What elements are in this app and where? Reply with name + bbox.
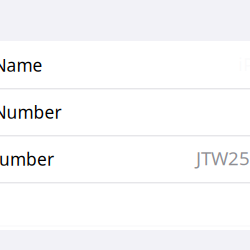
button[interactable]: Name: [0, 41, 250, 88]
button[interactable]: More: [0, 182, 250, 229]
staticText: JTW25: [196, 145, 250, 170]
staticText: umber: [0, 147, 54, 170]
staticText: Name: [0, 53, 42, 76]
staticText: Number: [0, 100, 61, 123]
button[interactable]: umber: [0, 135, 250, 182]
button[interactable]: Number: [0, 88, 250, 135]
